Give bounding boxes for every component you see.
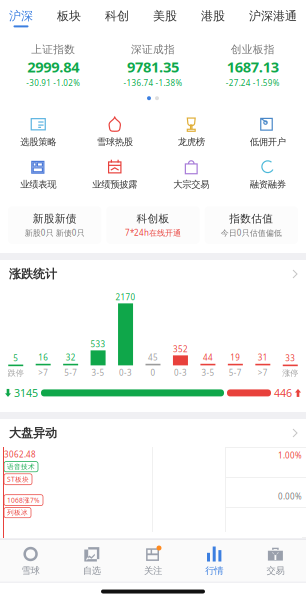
button[interactable]: 关注 <box>122 540 184 581</box>
staticText: 2999.84 <box>27 57 79 77</box>
button[interactable]: 沪深港通 <box>249 1 297 31</box>
button[interactable]: 选股策略 <box>0 116 76 148</box>
staticText: 涨跌统计 <box>9 267 57 281</box>
staticText: 语音技术 <box>7 463 35 471</box>
staticText: 列板冰 <box>7 509 28 517</box>
staticText: -27.24 -1.59% <box>226 78 280 88</box>
button[interactable]: 交易 <box>245 540 306 581</box>
staticText: 3062.48 <box>4 449 36 460</box>
staticText: 2170 <box>115 292 135 302</box>
staticText: 板块 <box>57 9 81 23</box>
staticText: 业绩表现 <box>20 179 56 190</box>
button[interactable]: 业绩表现 <box>0 159 76 190</box>
button[interactable]: 深证成指 <box>106 37 200 94</box>
staticText: ST板块 <box>7 475 29 484</box>
staticText: 0 <box>150 367 155 378</box>
staticText: 雪球热股 <box>97 136 133 148</box>
staticText: 雪球 <box>22 565 40 576</box>
button[interactable]: 板块 <box>57 1 81 31</box>
staticText: 9781.35 <box>127 57 179 77</box>
staticText: 352 <box>173 344 188 354</box>
staticText: >7 <box>258 367 268 378</box>
staticText: 龙虎榜 <box>178 136 205 148</box>
staticText: >7 <box>38 367 48 378</box>
staticText: 关注 <box>144 565 162 576</box>
button[interactable]: 业绩预披露 <box>76 159 153 190</box>
staticText: 32 <box>66 352 76 363</box>
staticText: 涨停 <box>282 368 298 378</box>
staticText: 5 <box>13 353 18 363</box>
staticText: 19 <box>230 352 240 363</box>
staticText: 大盘异动 <box>9 426 57 440</box>
staticText: 科创板 <box>136 212 169 225</box>
button[interactable]: 雪球热股 <box>76 116 153 148</box>
staticText: 5-7 <box>64 367 77 378</box>
staticText: 交易 <box>266 565 284 576</box>
staticText: 1687.13 <box>227 57 279 77</box>
button[interactable]: 上证指数 <box>6 37 101 94</box>
staticText: 融资融券 <box>250 179 286 190</box>
button[interactable]: 美股 <box>153 1 177 31</box>
staticText: 5-7 <box>229 367 242 378</box>
button[interactable]: 大宗交易 <box>153 159 229 190</box>
staticText: 上证指数 <box>31 43 75 56</box>
staticText: 科创 <box>105 9 129 23</box>
staticText: 0-3 <box>119 367 132 378</box>
staticText: 16 <box>38 352 48 363</box>
button[interactable]: 大盘异动 <box>0 419 306 447</box>
staticText: 3-5 <box>92 367 105 378</box>
staticText: 1.00% <box>278 450 302 461</box>
staticText: 0.00% <box>278 491 302 502</box>
staticText: 今日0只估值偏低 <box>221 227 282 238</box>
button[interactable]: 科创 <box>105 1 129 31</box>
staticText: -136.74 -1.38% <box>123 78 182 88</box>
staticText: 创业板指 <box>231 43 275 56</box>
staticText: 跌停 <box>8 368 24 378</box>
staticText: 新股新债 <box>33 212 77 225</box>
button[interactable]: 龙虎榜 <box>153 116 229 148</box>
staticText: 44 <box>203 352 213 363</box>
staticText: 3-5 <box>201 367 214 378</box>
staticText: 行情 <box>205 565 223 576</box>
staticText: 自选 <box>83 565 101 576</box>
staticText: 446 <box>274 386 292 400</box>
staticText: 美股 <box>153 9 177 23</box>
staticText: 低佣开户 <box>250 136 286 148</box>
button[interactable]: 港股 <box>201 1 225 31</box>
staticText: 深证成指 <box>131 43 175 56</box>
button[interactable]: 雪球 <box>0 540 61 581</box>
button[interactable]: 指数估值 <box>205 206 298 244</box>
staticText: 0-3 <box>174 367 187 378</box>
staticText: 新股0只 新债0只 <box>25 227 85 238</box>
staticText: 大宗交易 <box>173 179 209 190</box>
button[interactable]: 自选 <box>61 540 122 581</box>
staticText: 沪深 <box>9 9 33 23</box>
staticText: 31 <box>258 352 268 363</box>
button[interactable]: 低佣开户 <box>229 116 306 148</box>
button[interactable]: 涨跌统计 <box>0 260 306 288</box>
staticText: 业绩预披露 <box>92 179 137 190</box>
staticText: 3145 <box>14 386 38 400</box>
staticText: 1068涨7% <box>7 496 40 505</box>
button[interactable]: 沪深 <box>9 1 33 31</box>
staticText: 港股 <box>201 9 225 23</box>
button[interactable]: 行情 <box>184 540 245 581</box>
staticText: 指数估值 <box>229 212 273 225</box>
staticText: 45 <box>148 352 158 363</box>
button[interactable]: 科创板 <box>106 206 200 244</box>
staticText: 沪深港通 <box>249 9 297 23</box>
button[interactable]: 新股新债 <box>8 206 101 244</box>
staticText: 533 <box>91 339 106 349</box>
button[interactable]: 创业板指 <box>205 37 300 94</box>
staticText: 选股策略 <box>20 136 56 148</box>
button[interactable]: 融资融券 <box>229 159 306 190</box>
staticText: 33 <box>285 353 295 363</box>
staticText: -30.91 -1.02% <box>26 78 80 88</box>
staticText: 7*24h在线开通 <box>125 227 181 238</box>
